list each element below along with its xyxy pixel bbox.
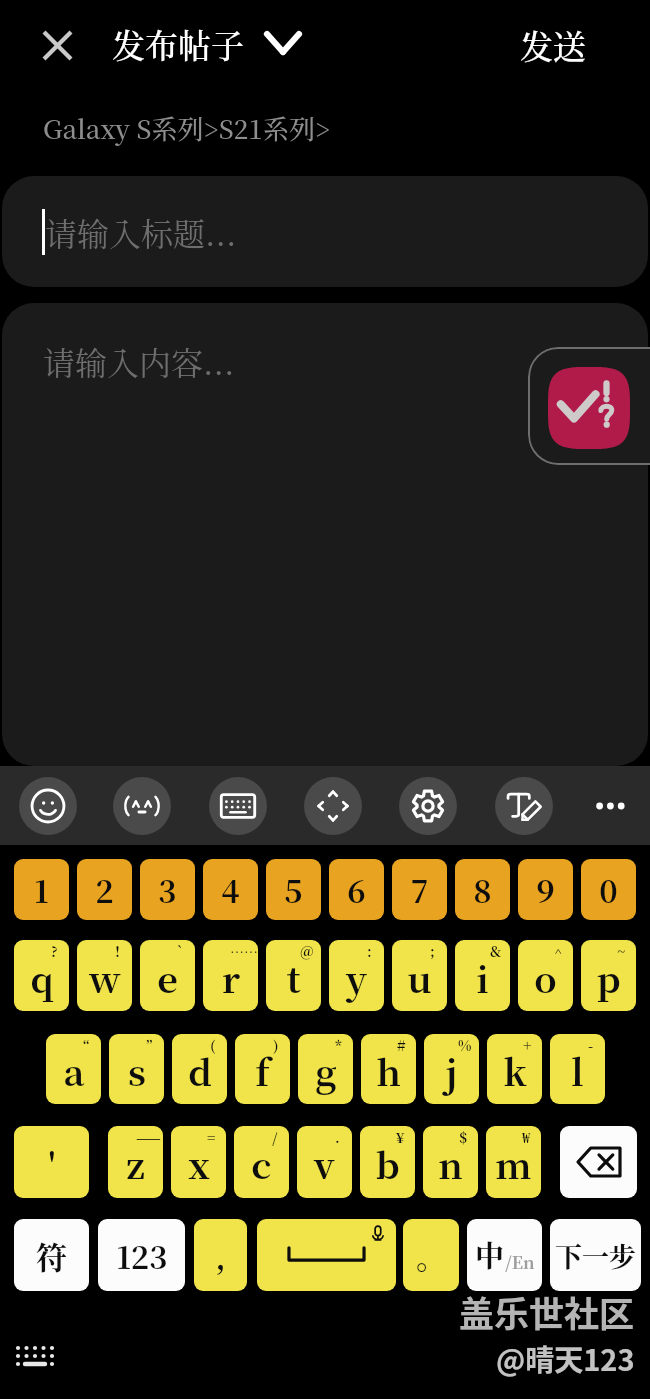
button[interactable]: !: [77, 940, 132, 1011]
button[interactable]: 0: [581, 859, 636, 920]
button[interactable]: Resize keyboard: [304, 777, 362, 835]
button[interactable]: Keyboard layout: [209, 777, 267, 835]
button[interactable]: ': [14, 1126, 89, 1198]
button[interactable]: 123: [98, 1219, 185, 1291]
button[interactable]: +: [487, 1034, 542, 1104]
button[interactable]: (: [172, 1034, 227, 1104]
staticText: *: [335, 1035, 342, 1055]
staticText: ”: [146, 1035, 153, 1055]
button[interactable]: Kaomoji: [113, 777, 171, 835]
button[interactable]: 6: [329, 859, 384, 920]
button[interactable]: =: [171, 1126, 226, 1198]
button[interactable]: ₩: [486, 1126, 541, 1198]
staticText: -: [588, 1035, 594, 1055]
staticText: :: [367, 941, 372, 961]
button[interactable]: Emoji: [19, 777, 77, 835]
button[interactable]: 符: [14, 1219, 89, 1291]
button[interactable]: Handwriting: [495, 777, 553, 835]
staticText: .: [335, 1127, 340, 1147]
staticText: l: [571, 1045, 584, 1097]
button[interactable]: 发送: [520, 21, 586, 68]
staticText: m: [495, 1138, 532, 1190]
button[interactable]: ;: [392, 940, 447, 1011]
staticText: ,: [215, 1233, 226, 1278]
button[interactable]: Galaxy S系列>S21系列>: [43, 109, 331, 146]
staticText: 8: [473, 867, 492, 912]
button[interactable]: &: [455, 940, 510, 1011]
button[interactable]: Switch language: [467, 1219, 542, 1291]
staticText: w: [89, 952, 121, 1004]
staticText: 6: [347, 867, 366, 912]
staticText: z: [126, 1138, 145, 1190]
button[interactable]: #: [361, 1034, 416, 1104]
button[interactable]: Close: [31, 19, 83, 71]
staticText: 0: [599, 867, 618, 912]
staticText: v: [314, 1138, 335, 1190]
button[interactable]: ~: [581, 940, 636, 1011]
staticText: c: [251, 1138, 272, 1190]
staticText: ): [273, 1035, 279, 1055]
staticText: @晴天123: [496, 1337, 635, 1379]
staticText: ¥: [396, 1127, 405, 1147]
button[interactable]: ^: [518, 940, 573, 1011]
button[interactable]: `: [140, 940, 195, 1011]
button[interactable]: 5: [266, 859, 321, 920]
staticText: 发送: [520, 21, 586, 68]
staticText: /En: [505, 1249, 535, 1273]
staticText: i: [476, 952, 489, 1004]
button[interactable]: 7: [392, 859, 447, 920]
button[interactable]: 1: [14, 859, 69, 920]
button[interactable]: ¥: [360, 1126, 415, 1198]
staticText: g: [315, 1045, 337, 1097]
button[interactable]: 2: [77, 859, 132, 920]
button[interactable]: 下一步: [550, 1219, 641, 1291]
button[interactable]: 3: [140, 859, 195, 920]
staticText: b: [375, 1138, 400, 1190]
button[interactable]: “: [46, 1034, 101, 1104]
staticText: o: [534, 952, 557, 1004]
button[interactable]: 4: [203, 859, 258, 920]
staticText: 7: [410, 867, 429, 912]
button[interactable]: 。: [403, 1219, 459, 1291]
staticText: Galaxy S系列>S21系列>: [43, 109, 331, 146]
staticText: =: [207, 1127, 216, 1147]
button[interactable]: ): [235, 1034, 290, 1104]
button[interactable]: ……: [203, 940, 258, 1011]
staticText: e: [157, 952, 178, 1004]
staticText: 4: [221, 867, 240, 912]
button[interactable]: -: [550, 1034, 605, 1104]
button[interactable]: @: [266, 940, 321, 1011]
button[interactable]: :: [329, 940, 384, 1011]
button[interactable]: 请输入标题...: [2, 176, 648, 287]
button[interactable]: Grammar assistant: [528, 347, 650, 465]
button[interactable]: 发布帖子: [112, 11, 302, 75]
staticText: a: [63, 1045, 85, 1097]
button[interactable]: %: [424, 1034, 479, 1104]
button[interactable]: .: [297, 1126, 352, 1198]
staticText: 下一步: [555, 1236, 636, 1275]
button[interactable]: ,: [194, 1219, 247, 1291]
button[interactable]: Settings: [399, 777, 457, 835]
button[interactable]: *: [298, 1034, 353, 1104]
staticText: 符: [36, 1233, 67, 1278]
button[interactable]: 8: [455, 859, 510, 920]
button[interactable]: 请输入内容...: [2, 303, 648, 766]
button[interactable]: Space: [257, 1219, 396, 1291]
button[interactable]: ”: [109, 1034, 164, 1104]
staticText: ~: [617, 941, 626, 961]
button[interactable]: $: [423, 1126, 478, 1198]
button[interactable]: 9: [518, 859, 573, 920]
button[interactable]: Hide keyboard: [8, 1336, 62, 1376]
button[interactable]: ?: [14, 940, 69, 1011]
button[interactable]: ——: [108, 1126, 163, 1198]
button[interactable]: Backspace: [560, 1126, 637, 1198]
staticText: ……: [230, 941, 258, 961]
staticText: ': [48, 1140, 56, 1185]
staticText: 1: [34, 867, 49, 912]
staticText: n: [438, 1138, 463, 1190]
staticText: !: [115, 941, 120, 961]
staticText: #: [397, 1035, 406, 1055]
staticText: 。: [416, 1233, 447, 1278]
button[interactable]: More options: [583, 778, 639, 834]
button[interactable]: /: [234, 1126, 289, 1198]
